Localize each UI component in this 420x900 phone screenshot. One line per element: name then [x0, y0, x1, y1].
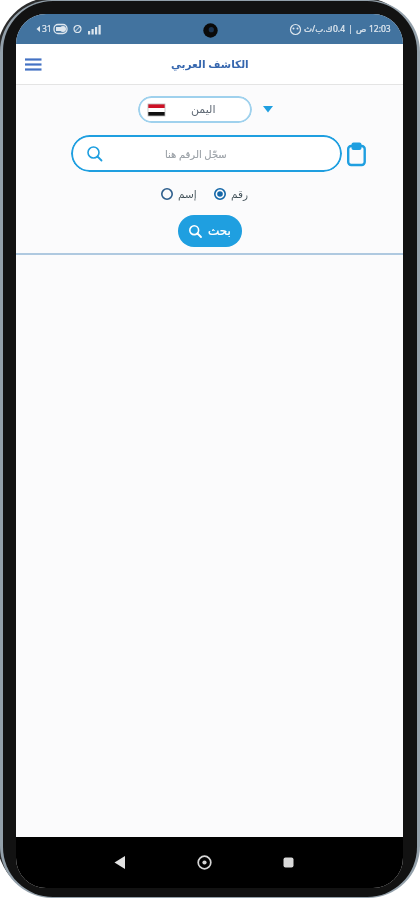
button[interactable]: اليمن — [138, 96, 252, 123]
button[interactable] — [283, 857, 294, 868]
staticText: ك.ب/ث — [304, 23, 333, 35]
staticText: 0.4 — [333, 23, 346, 35]
button[interactable] — [347, 142, 366, 166]
staticText: بحث — [208, 224, 231, 238]
staticText: | — [346, 23, 356, 35]
staticText: سجّل الرقم هنا — [165, 147, 227, 161]
button[interactable] — [197, 855, 212, 870]
staticText: 31 — [42, 23, 52, 35]
button[interactable]: بحث — [178, 215, 242, 247]
staticText: اليمن — [191, 103, 216, 116]
button[interactable]: إسم — [161, 188, 197, 200]
button[interactable] — [114, 856, 126, 869]
button[interactable] — [25, 58, 42, 71]
staticText: الكاشف العربي — [171, 57, 249, 71]
button[interactable]: رقم — [214, 188, 249, 200]
staticText: 12:03 — [369, 23, 391, 35]
button[interactable] — [263, 106, 273, 113]
staticText: إسم — [178, 188, 197, 200]
button[interactable]: سجّل الرقم هنا — [71, 135, 342, 172]
staticText: ص — [356, 23, 369, 35]
staticText: رقم — [231, 188, 249, 200]
